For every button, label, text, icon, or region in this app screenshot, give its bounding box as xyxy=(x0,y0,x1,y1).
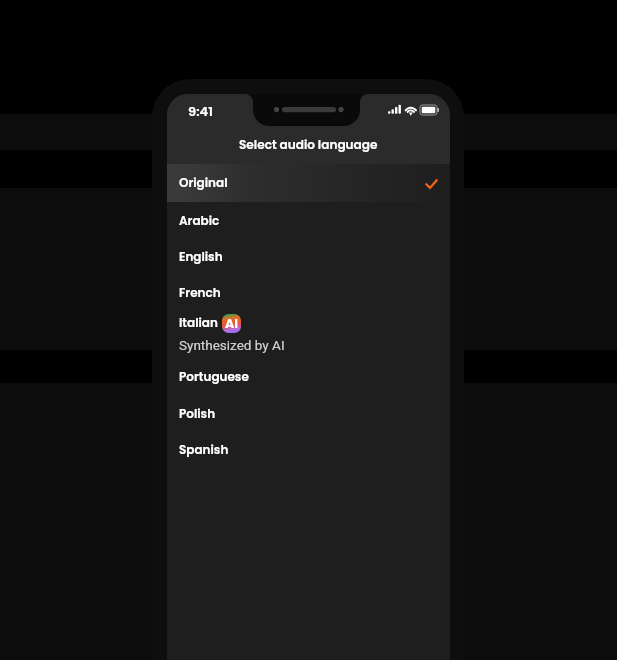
button[interactable]: Italian xyxy=(167,307,450,364)
other: Selected xyxy=(425,179,439,193)
staticText: English xyxy=(179,248,223,265)
button[interactable]: Arabic xyxy=(167,205,450,241)
staticText: Polish xyxy=(179,405,216,422)
staticText: Spanish xyxy=(179,441,229,458)
button[interactable]: Spanish xyxy=(167,434,450,470)
button[interactable]: Portuguese xyxy=(167,361,450,397)
button[interactable]: Polish xyxy=(167,398,450,434)
staticText: 9:41 xyxy=(188,102,213,120)
button[interactable]: French xyxy=(167,277,450,313)
staticText: Italian xyxy=(179,314,218,331)
staticText: Synthesized by AI xyxy=(179,337,285,353)
staticText: Original xyxy=(179,174,228,191)
staticText: Arabic xyxy=(179,212,220,229)
staticText: Portuguese xyxy=(179,368,249,385)
button[interactable]: Original xyxy=(167,164,450,202)
button[interactable]: English xyxy=(167,241,450,277)
staticText: French xyxy=(179,284,221,301)
staticText: AI xyxy=(225,315,238,332)
staticText: Select audio language xyxy=(239,136,378,153)
